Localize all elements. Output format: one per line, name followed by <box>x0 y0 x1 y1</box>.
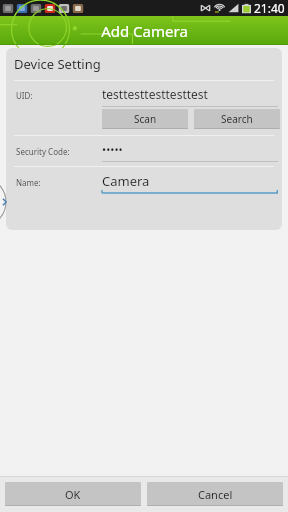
staticText: ••••• <box>102 142 123 157</box>
staticText: OK <box>65 487 81 502</box>
staticText: testtesttesttesttest <box>102 86 208 102</box>
staticText: 21:40 <box>254 0 285 16</box>
staticText: Cancel <box>198 487 233 502</box>
button[interactable]: OK <box>5 482 141 506</box>
staticText: Name: <box>16 177 41 188</box>
staticText: Search <box>221 112 253 126</box>
button[interactable]: testtesttesttesttest <box>102 83 278 107</box>
staticText: Device Setting <box>14 55 101 73</box>
button[interactable]: ••••• <box>102 140 278 162</box>
staticText: Security Code: <box>16 146 70 157</box>
button[interactable]: Cancel <box>147 482 283 506</box>
button[interactable]: Camera <box>102 170 278 194</box>
button[interactable]: Open drawer <box>0 178 14 226</box>
staticText: UID: <box>16 90 33 101</box>
button[interactable]: Scan <box>102 109 188 129</box>
staticText: Scan <box>134 112 157 126</box>
staticText: Add Camera <box>101 21 188 41</box>
button[interactable]: Search <box>194 109 280 129</box>
staticText: Camera <box>102 172 150 190</box>
